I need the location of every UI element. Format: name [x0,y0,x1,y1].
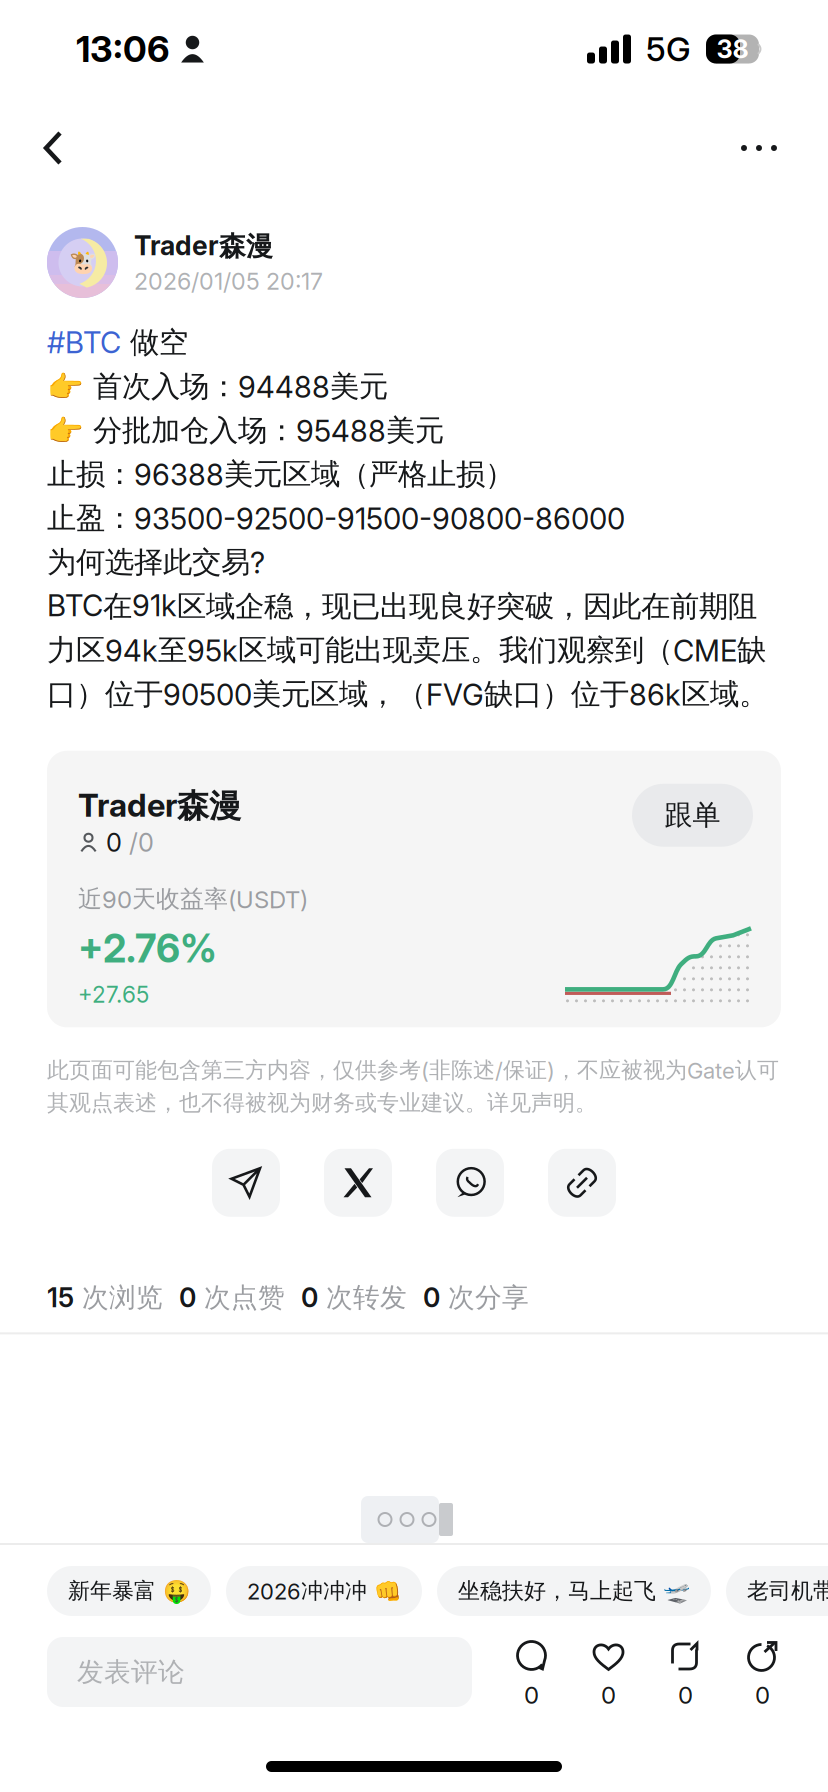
staticText: 13:06 [76,27,170,71]
staticText: 止盈：93500-92500-91500-90800-86000 [47,500,625,537]
staticText: 次浏览 [74,1281,179,1314]
staticText: 🐮 [68,249,96,276]
staticText: 新年暴富 🤑 [68,1577,190,1605]
button[interactable]: 2026冲冲冲 👊 [226,1566,422,1616]
staticText: Trader森漫 [78,786,241,826]
button[interactable]: Copy link [548,1149,616,1217]
staticText: Trader森漫 [134,229,273,263]
staticText: 近90天收益率(USDT) [78,884,308,914]
button[interactable]: Repost [647,1636,724,1710]
staticText: 为何选择此交易? [47,544,265,581]
button[interactable]: 发表评论 [47,1637,472,1707]
button[interactable]: Share on X [324,1149,392,1217]
staticText: 做空 [121,324,188,361]
button[interactable]: Share on Telegram [212,1149,280,1217]
staticText: 0 [301,1281,318,1314]
staticText: 👉 首次入场：94488美元 [47,368,388,405]
staticText: 5G [646,29,691,69]
staticText: 0 [524,1680,539,1709]
button[interactable]: Comment [493,1636,570,1710]
button[interactable]: Back [19,110,87,186]
staticText: 次点赞 [196,1281,301,1314]
staticText: #BTC [47,325,121,360]
staticText: 跟单 [664,798,720,833]
button[interactable]: Like [570,1636,647,1710]
staticText: +2.76% [78,925,217,972]
staticText: 老司机带带 [747,1577,828,1605]
staticText: 0 [601,1680,616,1709]
staticText: 次分享 [440,1281,529,1314]
staticText: 坐稳扶好，马上起飞 🛫 [458,1577,690,1605]
staticText: 2026冲冲冲 👊 [247,1577,401,1605]
staticText: 38 [716,34,748,64]
button[interactable]: 坐稳扶好，马上起飞 🛫 [437,1566,711,1616]
staticText: 0 [106,827,122,858]
staticText: 0 [179,1281,196,1314]
staticText: 次转发 [318,1281,423,1314]
staticText: 0 [423,1281,440,1314]
staticText: 15 [47,1281,74,1314]
staticText: 发表评论 [77,1655,185,1689]
staticText: /0 [129,827,154,858]
staticText: +27.65 [78,981,149,1008]
staticText: 此页面可能包含第三方内容，仅供参考(非陈述/保证)，不应被视为Gate认可其观点… [47,1056,779,1117]
button[interactable]: 跟单 [632,784,753,847]
button[interactable]: Share [724,1636,801,1710]
staticText: 止损：96388美元区域（严格止损） [47,456,514,493]
staticText: 👉 分批加仓入场：95488美元 [47,412,444,449]
button[interactable]: 新年暴富 🤑 [47,1566,211,1616]
button[interactable]: 老司机带带 [726,1566,828,1616]
button[interactable]: More options [725,110,793,186]
staticText: 0 [755,1680,770,1709]
button[interactable]: Share on WhatsApp [436,1149,504,1217]
staticText: 0 [678,1680,693,1709]
staticText: 2026/01/05 20:17 [134,267,323,295]
staticText: BTC在91k区域企稳，现已出现良好突破，因此在前期阻力区94k至95k区域可能… [47,588,768,713]
